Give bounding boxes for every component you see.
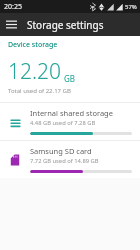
- button[interactable]: Open navigation menu: [0, 13, 23, 36]
- staticText: Internal shared storage: [30, 108, 113, 118]
- staticText: Device storage: [8, 40, 58, 50]
- button[interactable]: Samsung SD card: [0, 141, 140, 178]
- staticText: GB: [64, 73, 76, 84]
- staticText: 4.48 GB used of 7.28 GB: [30, 119, 96, 127]
- staticText: Samsung SD card: [30, 146, 92, 156]
- staticText: 57%: [125, 3, 137, 11]
- staticText: 7.72 GB used of 14.89 GB: [30, 157, 99, 165]
- staticText: 20:25: [4, 2, 22, 12]
- staticText: Storage settings: [27, 18, 104, 32]
- button[interactable]: Internal shared storage: [0, 103, 140, 140]
- staticText: 12.20: [8, 57, 62, 86]
- staticText: Total used of 22.17 GB: [8, 87, 71, 95]
